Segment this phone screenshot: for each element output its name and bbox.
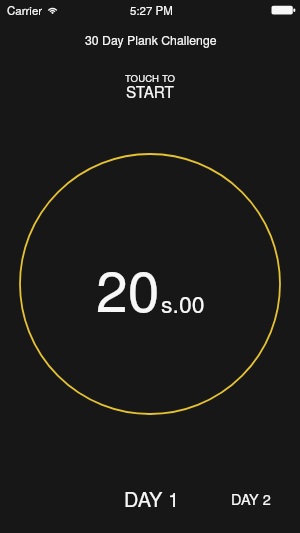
staticText: START bbox=[126, 80, 174, 102]
button[interactable]: Start plank timer bbox=[19, 153, 281, 415]
staticText: 20 bbox=[96, 247, 160, 329]
button[interactable]: TOUCH TO bbox=[0, 71, 300, 107]
other: Battery full bbox=[271, 5, 297, 16]
other: Wi-Fi bbox=[47, 6, 58, 14]
button[interactable]: DAY 2 bbox=[231, 488, 271, 509]
staticText: TOUCH TO bbox=[125, 71, 176, 85]
staticText: 30 Day Plank Challenge bbox=[85, 31, 217, 49]
staticText: DAY 1 bbox=[124, 484, 179, 513]
staticText: 5:27 PM bbox=[130, 2, 173, 18]
staticText: Carrier bbox=[7, 2, 43, 18]
staticText: s.00 bbox=[161, 287, 205, 320]
staticText: DAY 2 bbox=[231, 488, 271, 509]
button[interactable]: DAY 1 bbox=[124, 484, 179, 513]
